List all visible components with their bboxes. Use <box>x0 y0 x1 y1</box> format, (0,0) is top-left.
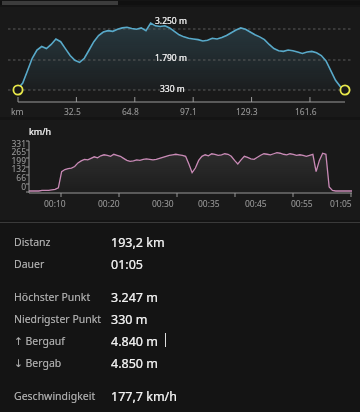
staticText: Niedrigster Punkt <box>14 312 111 326</box>
staticText: 161.6 <box>295 106 317 118</box>
staticText: 1.790 m <box>155 52 187 64</box>
staticText: 330 m <box>111 311 148 328</box>
staticText: 01:05 <box>111 256 143 273</box>
staticText: ↓ Bergab <box>14 356 111 370</box>
staticText: 00:20 <box>98 198 120 210</box>
staticText: 00:45 <box>245 198 267 210</box>
staticText: 177,7 km/h <box>111 388 177 405</box>
staticText: 331 <box>0 138 26 150</box>
staticText: Geschwindigkeit <box>14 389 111 403</box>
button[interactable]: Distanz <box>0 232 360 252</box>
staticText: Dauer <box>14 257 111 271</box>
staticText: Höchster Punkt <box>14 290 111 304</box>
button[interactable]: Geschwindigkeit <box>0 386 360 406</box>
staticText: ↑ Bergauf <box>14 334 111 348</box>
button[interactable]: Niedrigster Punkt <box>0 309 360 329</box>
staticText: 265 <box>0 146 26 158</box>
staticText: 00:55 <box>291 198 313 210</box>
staticText: 4.840 m <box>111 333 158 350</box>
staticText: 4.850 m <box>111 355 158 372</box>
staticText: 00:10 <box>44 198 66 210</box>
staticText: 97.1 <box>180 106 197 118</box>
staticText: 01:05 <box>330 198 352 210</box>
staticText: 3.250 m <box>155 15 187 27</box>
staticText: 0 <box>0 181 26 193</box>
staticText: 00:35 <box>198 198 220 210</box>
button[interactable]: Dauer <box>0 254 360 274</box>
staticText: 129.3 <box>236 106 258 118</box>
staticText: km/h <box>29 125 52 137</box>
staticText: 00:30 <box>152 198 174 210</box>
staticText: 3.247 m <box>111 289 158 306</box>
staticText: 64.8 <box>122 106 139 118</box>
staticText: 66 <box>0 172 26 184</box>
button[interactable]: Höchster Punkt <box>0 287 360 307</box>
staticText: 193,2 km <box>111 234 165 251</box>
staticText: 132 <box>0 163 26 175</box>
button[interactable]: ↑ Bergauf <box>0 331 360 351</box>
staticText: 199 <box>0 155 26 167</box>
staticText: Distanz <box>14 235 111 249</box>
button[interactable]: ↓ Bergab <box>0 353 360 373</box>
staticText: km <box>11 106 24 118</box>
staticText: 32.5 <box>64 106 81 118</box>
staticText: 330 m <box>160 83 185 95</box>
